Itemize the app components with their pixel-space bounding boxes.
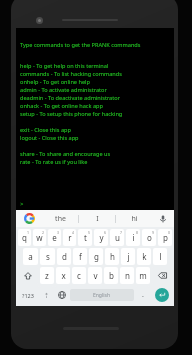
button[interactable]: Backspace [152,267,172,284]
staticText: 2 [42,230,45,235]
staticText: 0 [168,230,171,235]
button[interactable]: Shift [18,267,38,284]
staticText: 5 [88,230,91,235]
button[interactable]: 5 [78,229,92,246]
button[interactable]: 2 [33,229,46,246]
button[interactable]: v [88,267,102,284]
button[interactable]: n [120,267,134,284]
button[interactable]: Change language [55,286,68,304]
staticText: f [79,251,82,262]
button[interactable]: 7 [110,229,124,246]
staticText: onhelp - To get online help [20,78,174,86]
staticText: i [132,232,135,243]
staticText: b [109,270,114,281]
button[interactable]: k [137,248,151,265]
button[interactable]: x [56,267,70,284]
staticText: commands - To list hacking commands [20,70,174,78]
button[interactable]: I [79,210,115,227]
staticText: d [62,251,67,262]
button[interactable]: 1 [18,229,31,246]
staticText: onhack - To get online hack app [20,102,174,110]
staticText: 8 [136,230,139,235]
staticText: r [68,232,72,243]
staticText: I [96,214,99,224]
button[interactable]: Voice input [152,210,174,227]
button[interactable]: c [72,267,86,284]
staticText: share - To share and encourage us [20,150,174,158]
button[interactable]: j [121,248,135,265]
staticText: admin - To activate administrator [20,86,174,94]
button[interactable]: f [73,248,87,265]
staticText: s [46,251,50,262]
button[interactable]: h [105,248,119,265]
staticText: h [110,251,115,262]
staticText: deadmin - To deactivate administrator [20,94,174,102]
button[interactable]: 6 [94,229,108,246]
staticText: k [142,251,147,262]
staticText: x [61,270,66,281]
staticText: l [159,251,162,262]
button[interactable]: d [57,248,71,265]
button[interactable]: l [153,248,167,265]
button[interactable]: m [136,267,150,284]
staticText: 3 [57,230,60,235]
staticText: ?123 [22,292,34,299]
staticText: logout - Close this app [20,134,174,142]
staticText: 9 [152,230,155,235]
staticText: exit - Close this app [20,126,174,134]
button[interactable]: a [23,248,38,265]
staticText: u [115,232,120,243]
button[interactable]: 9 [142,229,156,246]
button[interactable]: Enter [151,287,172,303]
staticText: t [84,232,87,243]
staticText: y [99,232,104,243]
staticText: q [22,232,27,243]
button[interactable]: Emoji and comma [40,286,53,304]
staticText: > [20,200,24,208]
button[interactable]: Google search [16,210,42,227]
staticText: z [45,270,49,281]
staticText: help - To get help on this terminal [20,62,174,70]
staticText: p [163,232,168,243]
button[interactable]: g [89,248,103,265]
button[interactable]: s [40,248,55,265]
staticText: c [77,270,81,281]
button[interactable]: Period [136,286,149,304]
staticText: 4 [72,230,75,235]
button[interactable]: English [70,289,134,301]
staticText: . [142,290,144,300]
staticText: 7 [120,230,123,235]
button[interactable]: z [40,267,54,284]
button[interactable]: ?123 [17,286,39,304]
button[interactable]: the [42,210,78,227]
staticText: English [93,292,111,299]
staticText: o [147,232,152,243]
button[interactable]: 8 [126,229,140,246]
staticText: n [125,270,130,281]
staticText: rate - To rate us if you like [20,158,174,166]
staticText: j [127,251,130,262]
button[interactable]: 0 [158,229,172,246]
staticText: 1 [27,230,30,235]
button[interactable]: 3 [48,229,61,246]
staticText: m [139,270,147,281]
staticText: 6 [104,230,107,235]
button[interactable]: 4 [63,229,76,246]
staticText: w [36,232,43,243]
button[interactable]: b [104,267,118,284]
staticText: setup - To setup this phone for hacking [20,110,174,118]
staticText: the [55,214,66,224]
button[interactable]: hi [116,210,152,227]
staticText: Type commands to get the PRANK commands [20,41,174,49]
staticText: g [94,251,99,262]
staticText: a [28,251,33,262]
staticText: hi [131,214,138,224]
staticText: v [93,270,98,281]
staticText: e [52,232,57,243]
